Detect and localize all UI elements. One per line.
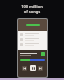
staticText: 100 million of songs: [0, 4, 64, 14]
button[interactable]: [20, 52, 45, 56]
button[interactable]: Previous: [18, 19, 47, 77]
button[interactable]: Next: [38, 66, 43, 71]
button[interactable]: [20, 59, 45, 61]
button[interactable]: [26, 24, 40, 26]
button[interactable]: Previous: [22, 66, 27, 71]
button[interactable]: Play: [30, 65, 36, 71]
button[interactable]: [20, 33, 45, 36]
button[interactable]: [20, 43, 45, 46]
button[interactable]: [20, 38, 45, 41]
